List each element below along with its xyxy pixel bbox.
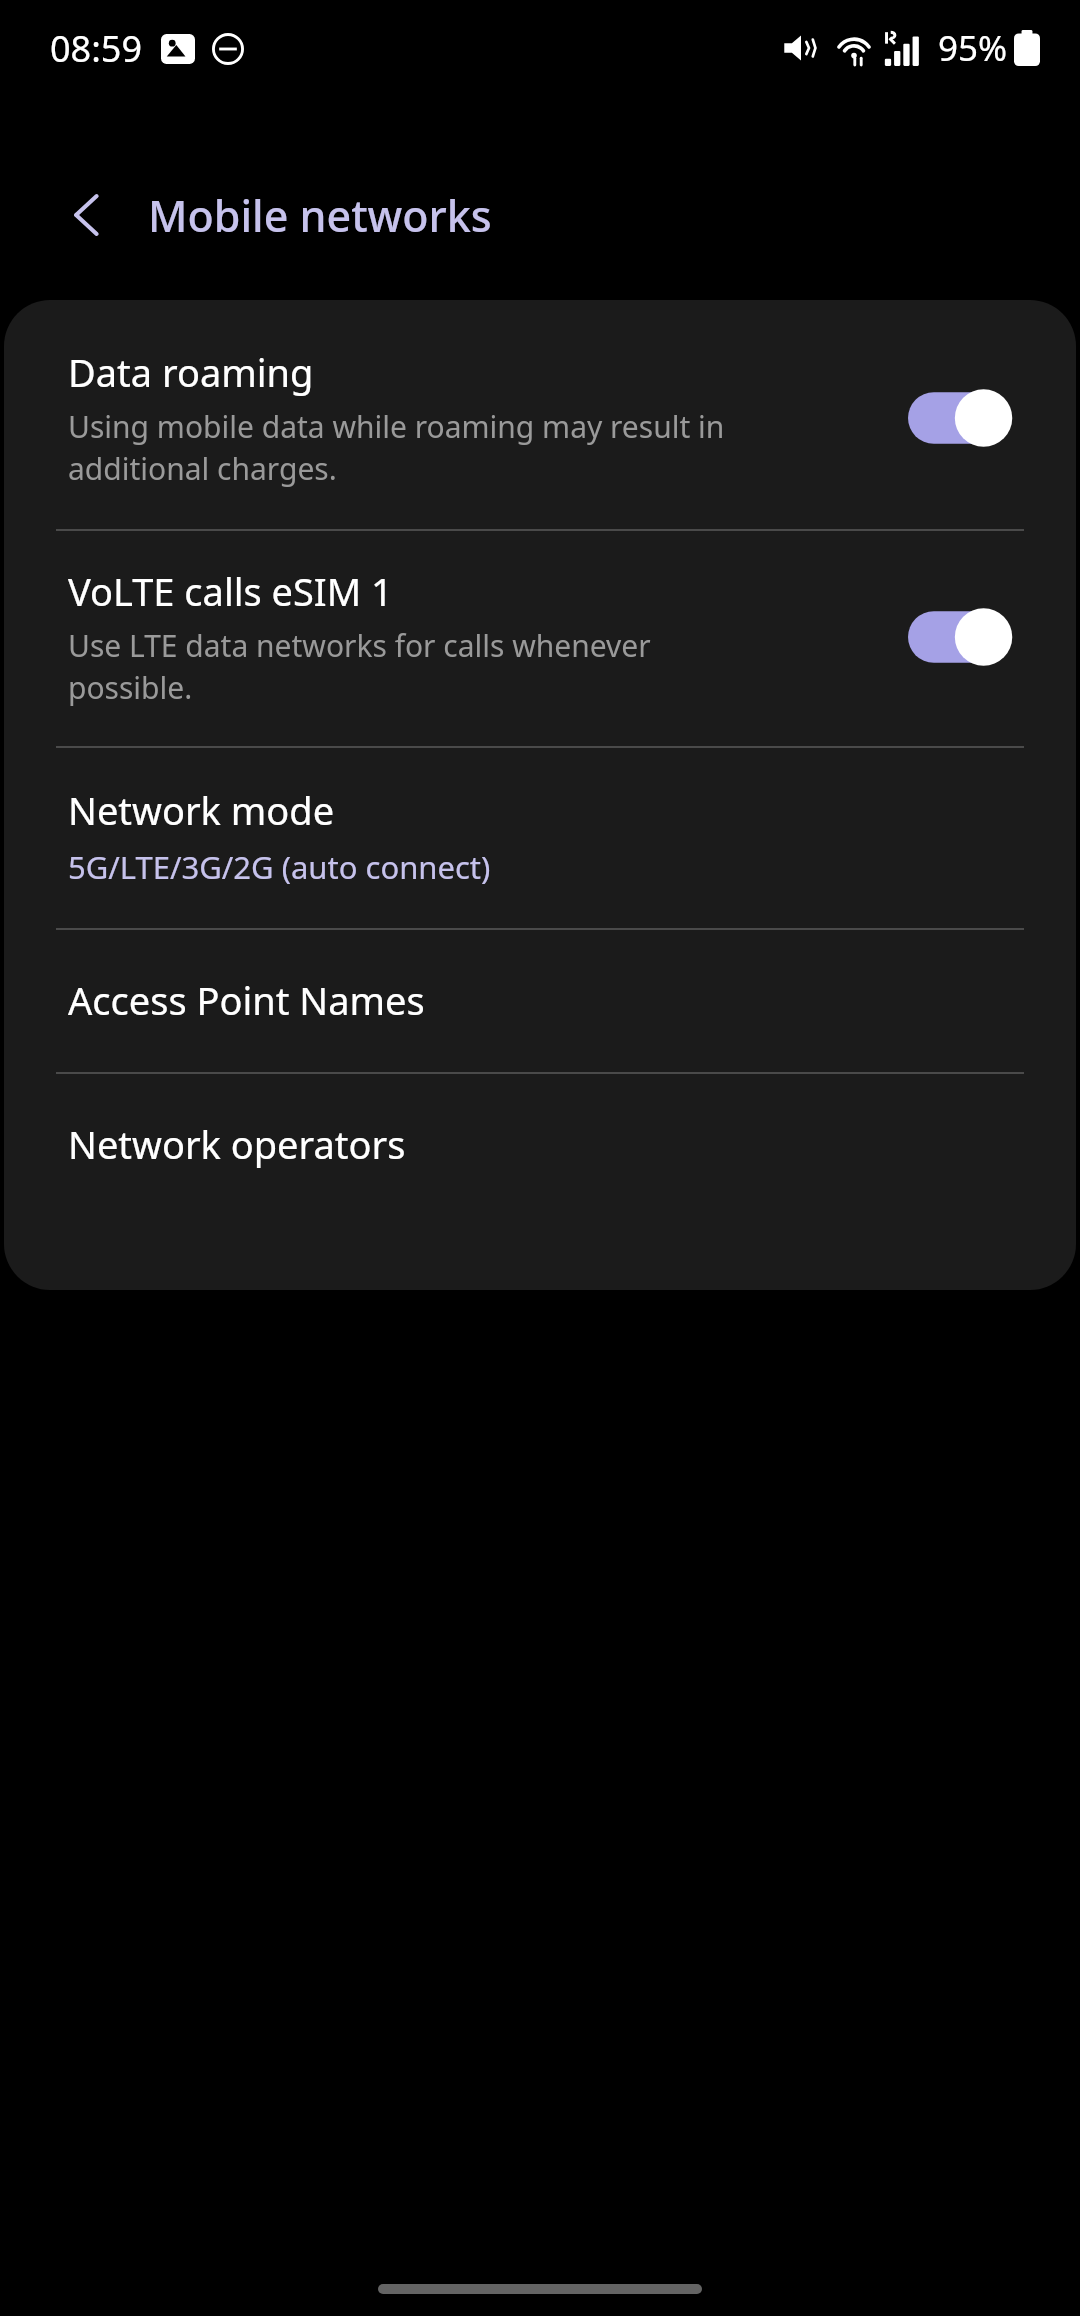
button[interactable]: Data roaming — [4, 300, 1076, 529]
button[interactable]: Toggle — [908, 604, 1024, 670]
staticText: 08:59 — [50, 24, 143, 73]
staticText: Mobile networks — [148, 186, 492, 245]
staticText: 95% — [938, 24, 1008, 72]
button[interactable]: Toggle — [908, 385, 1024, 451]
staticText: 5G/LTE/3G/2G (auto connect) — [68, 846, 491, 888]
button[interactable]: VoLTE calls eSIM 1 — [4, 531, 1076, 746]
button[interactable]: Access Point Names — [4, 930, 1076, 1072]
button[interactable]: Network mode — [4, 748, 1076, 928]
staticText: Use LTE data networks for calls whenever… — [68, 625, 651, 708]
staticText: Access Point Names — [68, 974, 425, 1026]
button[interactable]: Network operators — [4, 1074, 1076, 1290]
staticText: Using mobile data while roaming may resu… — [68, 406, 725, 489]
staticText: Network operators — [68, 1118, 406, 1170]
staticText: Data roaming — [68, 346, 314, 398]
staticText: VoLTE calls eSIM 1 — [68, 565, 393, 617]
staticText: Network mode — [68, 784, 335, 836]
button[interactable]: Back — [40, 167, 136, 263]
